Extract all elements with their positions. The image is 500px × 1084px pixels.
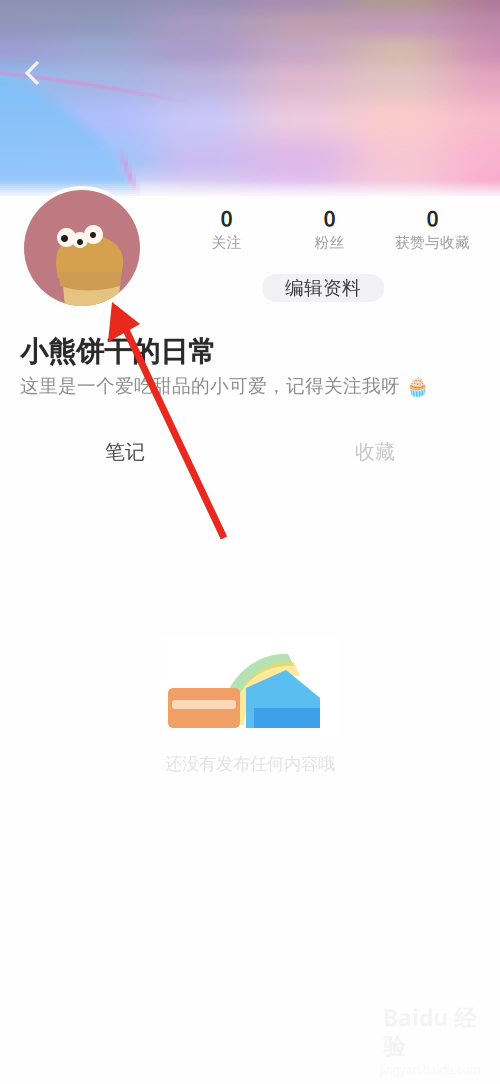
staticText: 笔记 [105,440,145,464]
staticText: Baidu 经验 [383,1002,477,1061]
button[interactable]: 笔记 [0,430,250,474]
staticText: 关注 [211,234,241,252]
staticText: 0 [323,204,335,233]
staticText: 还没有发布任何内容哦 [165,753,335,775]
button[interactable]: 0 [175,206,278,250]
button[interactable]: Back [8,50,54,96]
staticText: 0 [426,204,438,233]
button[interactable]: 编辑资料 [262,274,384,302]
button[interactable]: 0 [381,206,484,250]
staticText: 粉丝 [314,234,344,252]
button[interactable]: Profile photo [20,186,144,310]
button[interactable]: 收藏 [250,430,500,474]
button[interactable]: 0 [278,206,381,250]
staticText: 这里是一个爱吃甜品的小可爱，记得关注我呀 🧁 [20,374,429,397]
staticText: 编辑资料 [285,276,361,299]
staticText: 收藏 [355,440,395,464]
staticText: 0 [220,204,232,233]
staticText: 获赞与收藏 [395,234,470,252]
staticText: 小熊饼干的日常 [20,335,216,369]
